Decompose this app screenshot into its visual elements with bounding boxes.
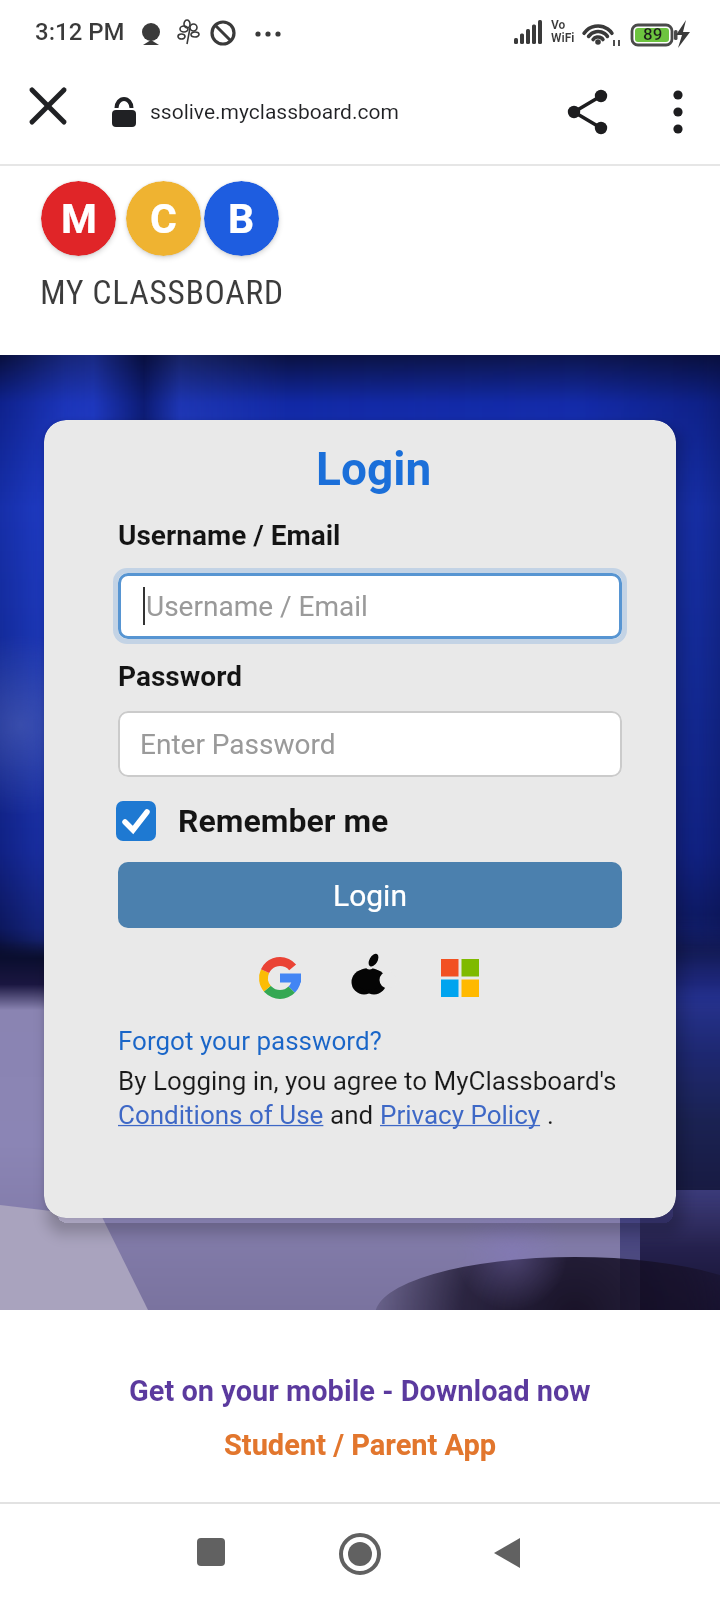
staticText: B <box>228 195 255 243</box>
button[interactable]: Username / Email <box>118 573 622 639</box>
staticText: . <box>547 1100 554 1130</box>
staticText: Password <box>118 660 242 693</box>
staticText: Remember me <box>178 802 389 840</box>
staticText: Username / Email <box>146 590 368 623</box>
button[interactable]: Conditions of Use <box>118 1100 330 1130</box>
button[interactable] <box>197 1538 225 1566</box>
staticText: M <box>61 195 97 243</box>
button[interactable]: Forgot your password? <box>118 1026 382 1056</box>
button[interactable] <box>650 84 706 140</box>
button[interactable]: Login <box>118 862 622 928</box>
button[interactable]: Remember me <box>116 801 389 841</box>
staticText: Enter Password <box>140 728 336 761</box>
staticText: Username / Email <box>118 519 341 552</box>
staticText: Login <box>316 442 432 496</box>
button[interactable]: Get on your mobile - Download now <box>129 1374 591 1408</box>
button[interactable] <box>259 957 301 999</box>
button[interactable]: Student / Parent App <box>224 1428 497 1462</box>
button[interactable]: Enter Password <box>118 711 622 777</box>
staticText: and <box>330 1100 380 1130</box>
button[interactable] <box>338 1532 382 1576</box>
button[interactable] <box>348 953 392 1003</box>
staticText: C <box>150 195 177 243</box>
button[interactable] <box>22 80 74 132</box>
button[interactable]: Privacy Policy <box>380 1100 547 1130</box>
button[interactable] <box>490 1536 524 1570</box>
staticText: Vo <box>551 18 566 32</box>
staticText: MY CLASSBOARD <box>40 272 284 312</box>
staticText: 3:12 PM <box>35 18 125 46</box>
button[interactable] <box>441 959 479 997</box>
staticText: Login <box>333 878 407 913</box>
staticText: By Logging in, you agree to MyClassboard… <box>118 1066 617 1096</box>
staticText: ssolive.myclassboard.com <box>150 100 399 125</box>
staticText: WiFi <box>551 31 575 45</box>
button[interactable]: ssolive.myclassboard.com <box>150 70 399 154</box>
button[interactable] <box>560 84 616 140</box>
staticText: 89 <box>643 24 663 44</box>
